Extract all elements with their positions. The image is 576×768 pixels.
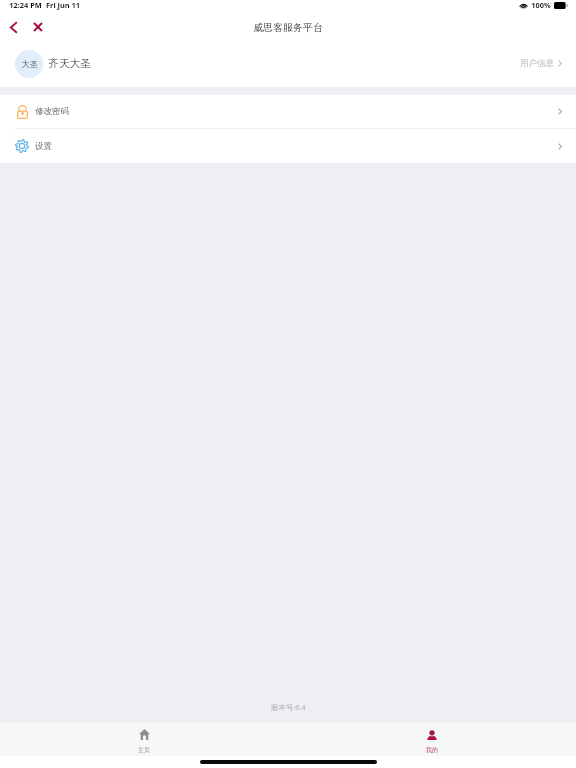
staticText: 100%: [531, 0, 551, 10]
staticText: 我的: [426, 746, 438, 754]
staticText: 修改密码: [35, 106, 69, 117]
staticText: 版本号:6.4: [271, 702, 306, 712]
staticText: 设置: [35, 141, 52, 152]
staticText: 威思客服务平台: [253, 21, 323, 34]
button[interactable]: 我的: [288, 723, 576, 756]
staticText: 齐天大圣: [48, 57, 91, 70]
staticText: 主页: [138, 746, 150, 754]
button[interactable]: 设置: [0, 129, 576, 163]
staticText: 大圣: [21, 59, 38, 69]
button[interactable]: 大圣: [0, 40, 576, 87]
button[interactable]: Close: [27, 16, 49, 38]
button[interactable]: Back: [0, 14, 27, 40]
button[interactable]: 主页: [0, 723, 288, 756]
staticText: 用户信息: [520, 58, 554, 69]
button[interactable]: 修改密码: [0, 95, 576, 128]
staticText: 12:24 PM: [9, 0, 42, 10]
staticText: Fri Jun 11: [46, 0, 80, 10]
